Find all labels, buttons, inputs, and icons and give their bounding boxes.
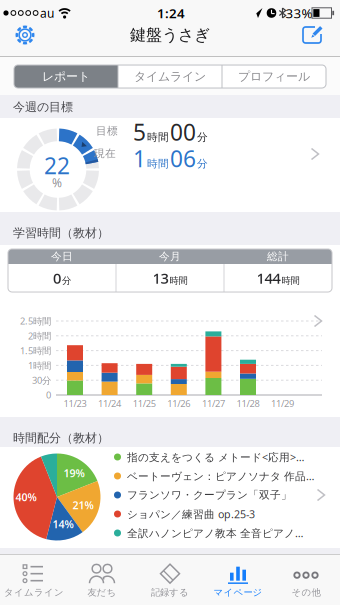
staticText: 22 bbox=[44, 150, 70, 180]
staticText: 19% bbox=[63, 466, 84, 480]
button[interactable]: タイムライン bbox=[118, 65, 222, 88]
staticText: 全訳ハノンピアノ教本 全音ピアノ… bbox=[127, 526, 303, 540]
staticText: 1時間 bbox=[28, 359, 51, 372]
staticText: 時間 bbox=[147, 131, 169, 144]
staticText: 144 bbox=[256, 268, 280, 288]
button[interactable]: 今週の目標の詳細 bbox=[0, 118, 340, 212]
staticText: 33% bbox=[285, 4, 312, 22]
staticText: 時間 bbox=[169, 275, 187, 286]
button[interactable]: タイムライン bbox=[0, 555, 68, 604]
staticText: 分 bbox=[197, 157, 208, 170]
staticText: タイムライン bbox=[134, 69, 206, 84]
staticText: 目標 bbox=[96, 124, 118, 137]
staticText: 13 bbox=[152, 268, 168, 288]
staticText: 総計 bbox=[267, 250, 289, 263]
staticText: 2時間 bbox=[28, 330, 51, 342]
staticText: 分 bbox=[197, 131, 208, 144]
staticText: 時間配分（教材） bbox=[13, 431, 109, 445]
staticText: 記録する bbox=[151, 587, 189, 598]
staticText: 5 bbox=[133, 117, 146, 147]
staticText: % bbox=[52, 174, 62, 190]
staticText: 学習時間（教材） bbox=[13, 226, 109, 240]
staticText: 時間 bbox=[281, 275, 299, 286]
staticText: 2.5時間 bbox=[20, 315, 51, 327]
staticText: 鍵盤うさぎ bbox=[130, 25, 210, 45]
staticText: プロフィール bbox=[238, 69, 310, 84]
staticText: 11/29 bbox=[271, 397, 294, 410]
staticText: 0 bbox=[46, 389, 51, 401]
staticText: 今月 bbox=[159, 250, 181, 263]
staticText: タイムライン bbox=[4, 587, 64, 598]
button[interactable]: 記録を書く bbox=[295, 22, 335, 48]
staticText: 現在 bbox=[94, 147, 116, 160]
button[interactable]: 学習時間の詳細 bbox=[0, 293, 340, 417]
staticText: 1:24 bbox=[157, 4, 185, 22]
staticText: 11/27 bbox=[202, 397, 225, 410]
button[interactable]: レポート bbox=[14, 65, 118, 88]
staticText: 21% bbox=[72, 498, 93, 512]
button[interactable]: マイページ bbox=[204, 555, 272, 604]
staticText: その他 bbox=[291, 587, 320, 598]
staticText: 11/25 bbox=[133, 397, 156, 410]
staticText: マイページ bbox=[213, 587, 262, 598]
staticText: 00 bbox=[170, 117, 196, 147]
staticText: 30分 bbox=[32, 374, 51, 386]
staticText: 06 bbox=[170, 143, 196, 173]
staticText: 1.5時間 bbox=[20, 344, 51, 357]
staticText: 40% bbox=[15, 490, 36, 504]
staticText: au bbox=[40, 5, 54, 21]
staticText: 11/23 bbox=[63, 397, 86, 410]
staticText: 指の支えをつくる メトード<応用>… bbox=[127, 450, 304, 464]
button[interactable]: 記録する bbox=[136, 555, 204, 604]
button[interactable]: 時間配分の詳細 bbox=[0, 447, 340, 548]
staticText: 分 bbox=[62, 275, 71, 286]
staticText: フランソワ・クープラン「双子」 bbox=[127, 488, 292, 501]
staticText: 今週の目標 bbox=[13, 100, 73, 114]
staticText: 友だち bbox=[87, 587, 116, 598]
staticText: ベートーヴェン：ピアノソナタ 作品… bbox=[127, 469, 314, 483]
staticText: 今日 bbox=[51, 250, 73, 263]
staticText: 11/28 bbox=[236, 397, 259, 410]
staticText: ショパン／練習曲 op.25-3 bbox=[127, 507, 255, 521]
staticText: 1 bbox=[133, 143, 146, 173]
button[interactable]: プロフィール bbox=[222, 65, 326, 88]
button[interactable]: その他 bbox=[272, 555, 340, 604]
staticText: 0 bbox=[53, 268, 61, 288]
staticText: 11/26 bbox=[167, 397, 190, 410]
staticText: 時間 bbox=[147, 157, 169, 170]
staticText: 14% bbox=[52, 517, 73, 531]
staticText: 11/24 bbox=[98, 397, 121, 410]
button[interactable]: 設定 bbox=[5, 22, 45, 48]
button[interactable]: 友だち bbox=[68, 555, 136, 604]
staticText: レポート bbox=[42, 69, 90, 84]
